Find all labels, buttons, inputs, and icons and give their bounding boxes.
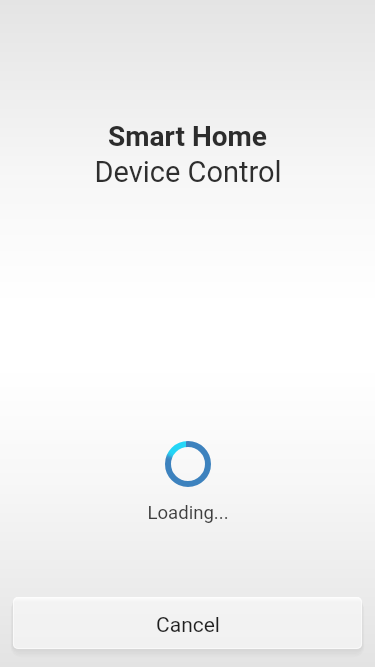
staticText: Loading... bbox=[147, 502, 229, 524]
staticText: Smart Home bbox=[108, 120, 267, 153]
staticText: Cancel bbox=[156, 613, 220, 638]
button[interactable]: Cancel bbox=[9, 593, 366, 653]
staticText: Device Control bbox=[94, 155, 282, 189]
